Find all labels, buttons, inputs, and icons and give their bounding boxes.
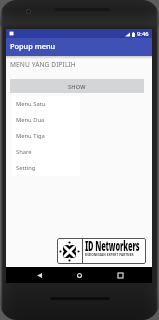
button[interactable]: Back xyxy=(31,267,47,283)
staticText: MENU YANG DIPILIH xyxy=(10,60,76,69)
staticText: Share xyxy=(16,148,32,156)
staticText: Menu Tiga xyxy=(16,132,45,140)
staticText: Menu Satu xyxy=(16,100,46,108)
button[interactable]: Menu Dua xyxy=(12,112,80,128)
button[interactable]: Share xyxy=(12,144,80,160)
staticText: INDONESIAN EXPERT PARTNER xyxy=(85,253,134,257)
button[interactable]: Menu Satu xyxy=(12,96,80,112)
staticText: Popup menu xyxy=(10,41,56,51)
staticText: ID Networkers xyxy=(85,238,140,255)
button[interactable]: Setting xyxy=(12,160,80,176)
staticText: Menu Dua xyxy=(16,116,45,124)
button[interactable]: SHOW xyxy=(10,79,144,93)
staticText: Setting xyxy=(16,164,36,172)
staticText: SHOW xyxy=(68,83,86,90)
button[interactable]: Menu Tiga xyxy=(12,128,80,144)
button[interactable]: Recents xyxy=(112,267,128,283)
staticText: 9:46 xyxy=(137,30,149,38)
button[interactable]: Home xyxy=(71,267,87,283)
